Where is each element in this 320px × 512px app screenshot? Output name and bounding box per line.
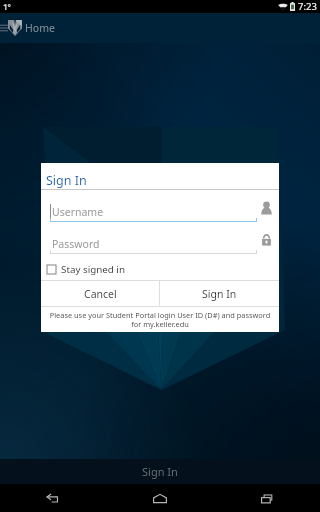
other: Password	[261, 233, 272, 247]
staticText: Home	[25, 21, 55, 35]
staticText: Sign In	[46, 172, 87, 189]
button[interactable]: Open navigation drawer	[0, 13, 8, 43]
other: User	[261, 201, 272, 215]
staticText: Stay signed in	[61, 263, 125, 276]
staticText: 7:23	[298, 0, 317, 13]
staticText: Username	[52, 205, 104, 219]
staticText: Password	[52, 237, 100, 251]
button[interactable]: Back	[0, 484, 106, 512]
staticText: 1°	[3, 1, 11, 12]
staticText: Sign In	[202, 287, 237, 301]
staticText: Sign In	[142, 464, 178, 479]
staticText: Cancel	[84, 287, 117, 301]
button[interactable]: Sign In	[160, 281, 279, 306]
button[interactable]: Stay signed in	[41, 258, 279, 280]
staticText: Please use your Student Portal login Use…	[47, 310, 273, 329]
button[interactable]: Sign In	[0, 459, 320, 484]
button[interactable]: Cancel	[41, 281, 159, 306]
button[interactable]: Home	[106, 484, 213, 512]
button[interactable]: Recent apps	[213, 484, 320, 512]
